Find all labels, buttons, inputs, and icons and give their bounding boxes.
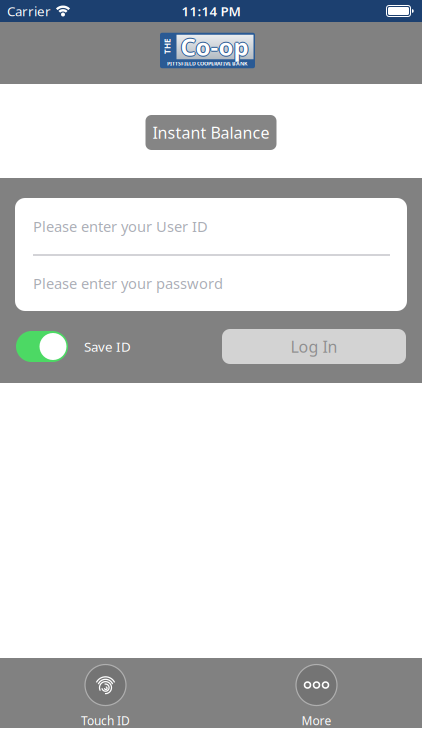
staticText: Co-op (180, 31, 248, 62)
staticText: Co-op (180, 32, 248, 63)
staticText: Carrier (7, 2, 51, 20)
button[interactable]: Instant Balance (145, 115, 276, 150)
staticText: Co-op (180, 30, 248, 61)
staticText: More (301, 712, 331, 728)
button[interactable]: Please enter your password (15, 255, 407, 311)
staticText: Please enter your User ID (33, 216, 208, 236)
staticText: Please enter your password (33, 273, 223, 293)
staticText: 11:14 PM (181, 2, 240, 20)
staticText: Log In (290, 336, 337, 357)
staticText: Save ID (84, 338, 131, 355)
staticText: Touch ID (81, 712, 130, 728)
staticText: Instant Balance (152, 122, 269, 143)
button[interactable]: More (211, 658, 422, 728)
button[interactable]: Save ID (16, 331, 68, 362)
staticText: THE (160, 41, 175, 52)
staticText: Co-op (181, 31, 249, 62)
button[interactable]: Log In (222, 329, 406, 364)
button[interactable]: Touch ID (0, 658, 211, 728)
button[interactable]: Please enter your User ID (15, 198, 407, 254)
staticText: Co-op (179, 31, 247, 62)
staticText: PITTSFIELD COOPERATIVE BANK (167, 60, 248, 67)
